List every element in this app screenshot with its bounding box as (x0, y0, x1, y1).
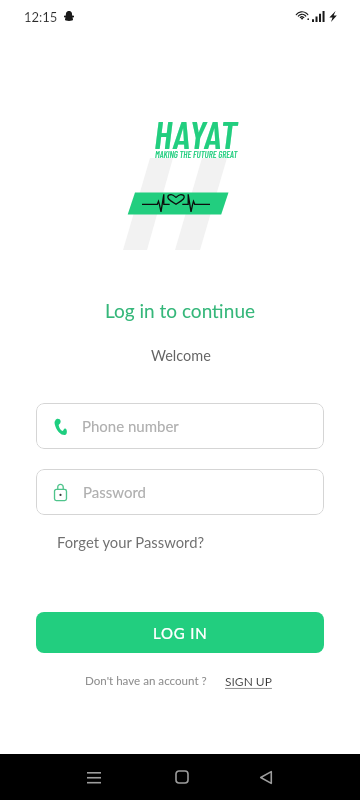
staticText: Don't have an account ? (85, 674, 207, 688)
staticText: 12:15 (24, 9, 58, 25)
button[interactable]: SIGN UP (223, 671, 274, 691)
staticText: Phone number (82, 417, 179, 435)
button[interactable]: Forget your Password? (45, 526, 217, 558)
staticText: HAYAT (154, 110, 238, 157)
staticText: Forget your Password? (57, 533, 205, 551)
staticText: MAKING THE FUTURE GREAT (155, 149, 238, 160)
staticText: SIGN UP (225, 674, 272, 688)
button[interactable]: LOG IN (36, 612, 324, 653)
staticText: LOG IN (153, 624, 208, 642)
button[interactable]: Recent apps (70, 754, 118, 800)
staticText: Welcome (151, 347, 211, 364)
staticText: Log in to continue (105, 299, 256, 322)
button[interactable]: Password (36, 469, 324, 515)
button[interactable]: Phone number (36, 403, 324, 449)
button[interactable]: Home (158, 754, 206, 800)
staticText: Password (83, 483, 146, 501)
button[interactable]: Back (242, 754, 290, 800)
